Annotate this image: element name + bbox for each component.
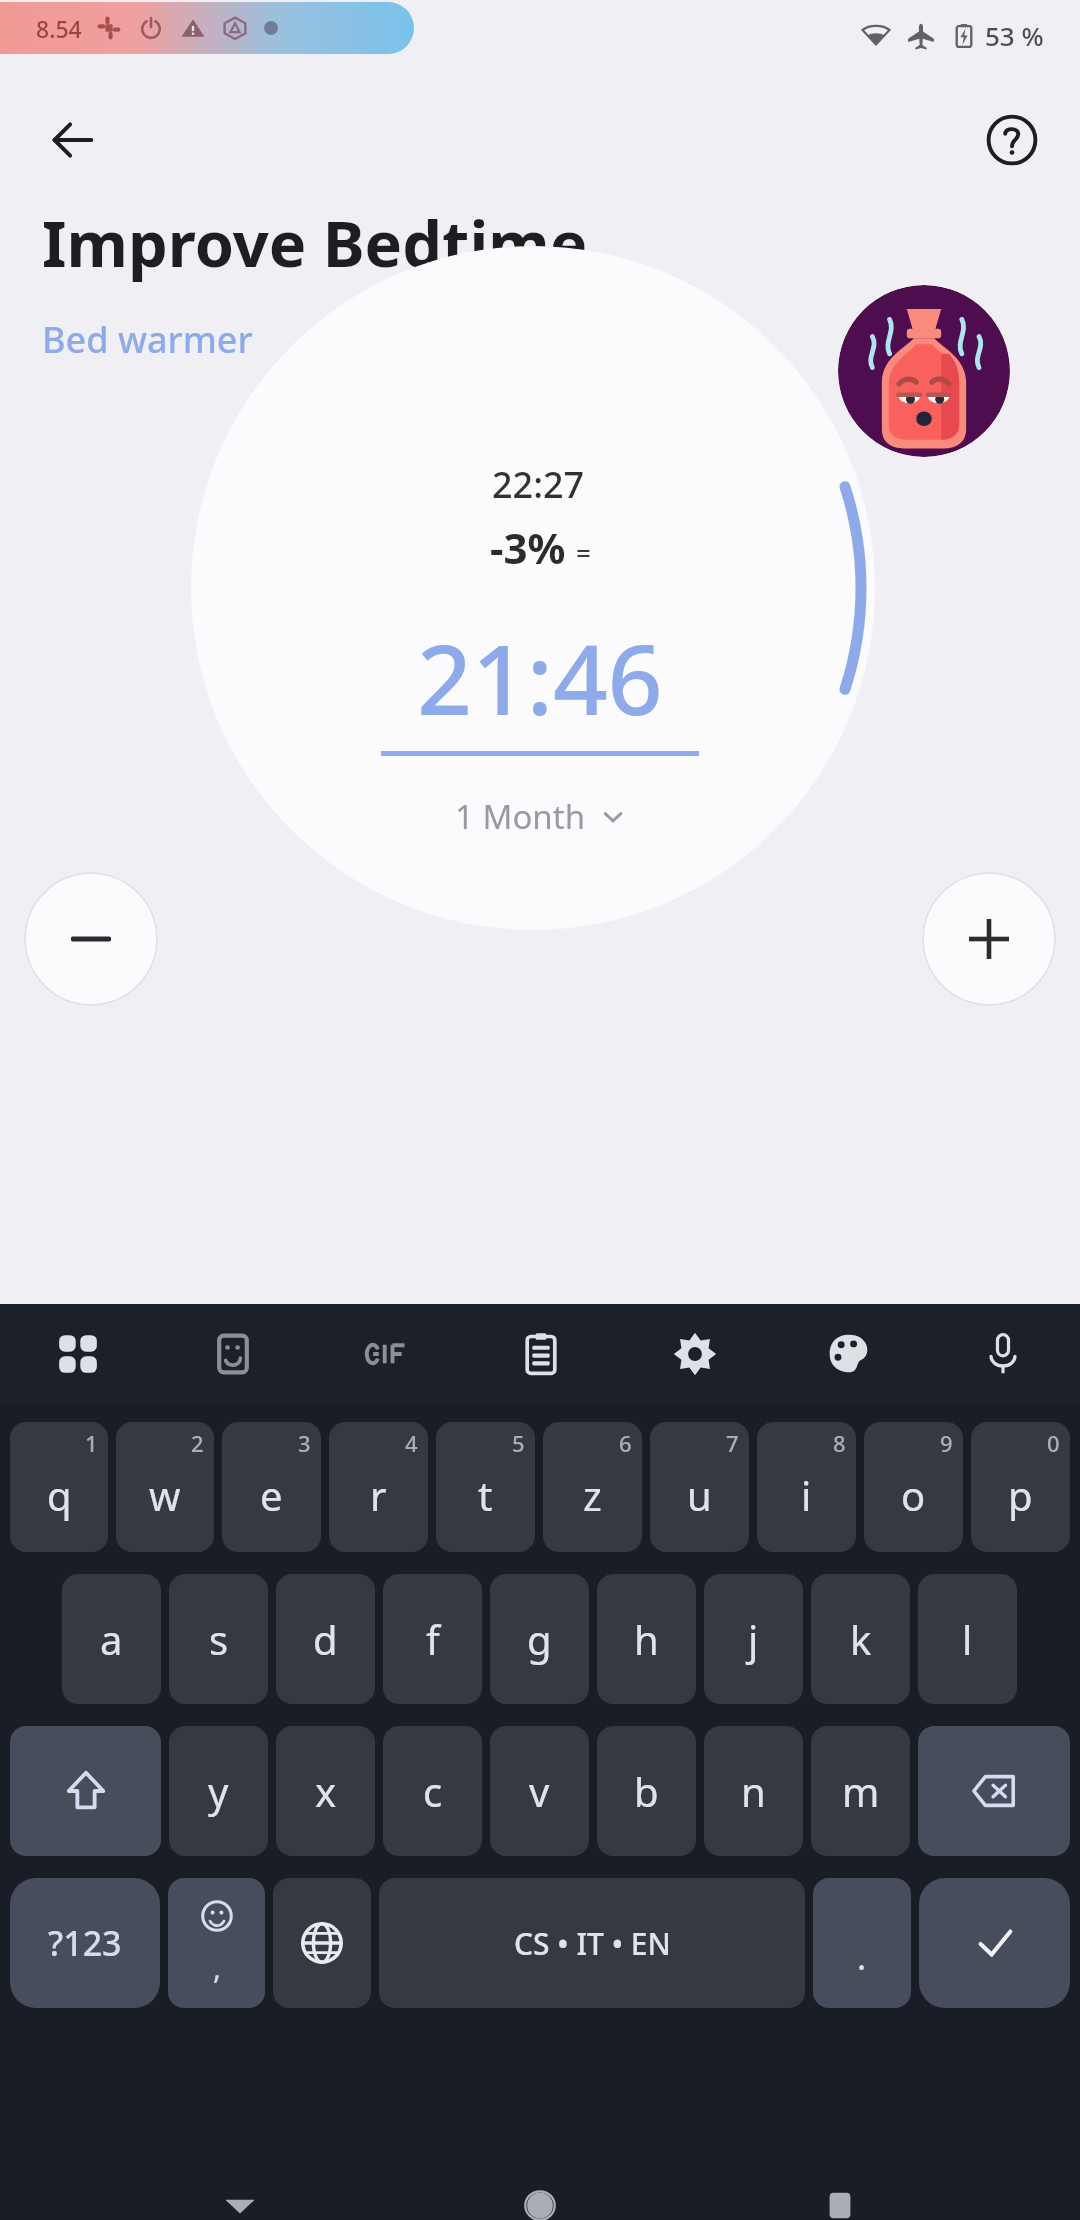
button[interactable]: Increase	[922, 872, 1056, 1006]
button[interactable]: 8	[757, 1422, 856, 1552]
button[interactable]: Hide keyboard	[180, 2191, 300, 2220]
staticText: r	[370, 1468, 387, 1522]
staticText: -3%	[490, 519, 566, 576]
staticText: a	[100, 1612, 123, 1666]
button[interactable]: Back	[30, 98, 114, 182]
button[interactable]: 9	[864, 1422, 963, 1552]
staticText: p	[1008, 1468, 1033, 1522]
staticText: q	[47, 1468, 72, 1522]
button[interactable]: g	[490, 1574, 589, 1704]
button[interactable]: Themes	[772, 1304, 926, 1404]
button[interactable]: Settings	[618, 1304, 772, 1404]
button[interactable]: k	[811, 1574, 910, 1704]
staticText: w	[149, 1468, 181, 1522]
button[interactable]: s	[169, 1574, 268, 1704]
button[interactable]: v	[490, 1726, 589, 1856]
staticText: 3	[298, 1428, 311, 1458]
staticText: =	[576, 534, 591, 569]
button[interactable]: Emoji	[168, 1878, 265, 2008]
staticText: l	[962, 1612, 973, 1666]
button[interactable]: 3	[222, 1422, 321, 1552]
button[interactable]: 4	[329, 1422, 428, 1552]
button[interactable]: a	[62, 1574, 161, 1704]
staticText: .	[857, 1934, 867, 1980]
staticText: CS • IT • EN	[514, 1923, 671, 1964]
button[interactable]: Shift	[10, 1726, 161, 1856]
button[interactable]: x	[276, 1726, 375, 1856]
button[interactable]: Recent apps	[780, 2191, 900, 2220]
button[interactable]: .	[813, 1878, 911, 2008]
staticText: 7	[726, 1428, 739, 1458]
button[interactable]: ?123	[10, 1878, 160, 2008]
button[interactable]: Change language	[273, 1878, 371, 2008]
staticText: 1	[85, 1428, 98, 1458]
staticText: u	[687, 1468, 712, 1522]
staticText: 22:27	[492, 460, 585, 509]
button[interactable]: Enter	[919, 1878, 1070, 2008]
staticText: i	[801, 1468, 812, 1522]
staticText: Bed warmer	[42, 315, 253, 364]
staticText: 6	[619, 1428, 632, 1458]
button[interactable]: 7	[650, 1422, 749, 1552]
button[interactable]: GIF	[310, 1304, 464, 1404]
staticText: 5	[512, 1428, 525, 1458]
button[interactable]: Decrease	[24, 872, 158, 1006]
staticText: f	[426, 1612, 440, 1666]
button[interactable]: c	[383, 1726, 482, 1856]
staticText: j	[748, 1612, 759, 1666]
staticText: v	[529, 1764, 550, 1818]
staticText: c	[423, 1764, 443, 1818]
staticText: ?123	[48, 1920, 122, 1966]
button[interactable]: 5	[436, 1422, 535, 1552]
staticText: z	[583, 1468, 602, 1522]
button[interactable]: j	[704, 1574, 803, 1704]
staticText: x	[315, 1764, 337, 1818]
button[interactable]: h	[597, 1574, 696, 1704]
staticText: 21:46	[417, 612, 663, 743]
button[interactable]: Home	[480, 2191, 600, 2220]
button[interactable]: 1	[10, 1422, 108, 1552]
button[interactable]: y	[169, 1726, 268, 1856]
button[interactable]: l	[918, 1574, 1017, 1704]
staticText: Improve Bedtime	[42, 200, 588, 286]
button[interactable]: 2	[116, 1422, 214, 1552]
staticText: 0	[1047, 1428, 1060, 1458]
button[interactable]: 1 Month	[447, 790, 634, 843]
button[interactable]: 0	[971, 1422, 1070, 1552]
button[interactable]: Clipboard	[464, 1304, 618, 1404]
button[interactable]: CS • IT • EN	[379, 1878, 805, 2008]
button[interactable]: b	[597, 1726, 696, 1856]
staticText: d	[313, 1612, 338, 1666]
staticText: 8.54	[36, 13, 82, 44]
staticText: h	[634, 1612, 659, 1666]
button[interactable]: 6	[543, 1422, 642, 1552]
button[interactable]: Voice input	[926, 1304, 1080, 1404]
button[interactable]: Apps	[0, 1304, 155, 1404]
staticText: 53 %	[985, 18, 1044, 53]
staticText: n	[741, 1764, 766, 1818]
button[interactable]: Help	[970, 98, 1054, 182]
button[interactable]: Bed warmer	[42, 315, 253, 364]
button[interactable]: Backspace	[918, 1726, 1070, 1856]
button[interactable]: f	[383, 1574, 482, 1704]
staticText: 8	[833, 1428, 846, 1458]
staticText: e	[260, 1468, 283, 1522]
button[interactable]: Stickers	[155, 1304, 310, 1404]
staticText: 2	[191, 1428, 204, 1458]
button[interactable]: d	[276, 1574, 375, 1704]
staticText: 9	[940, 1428, 953, 1458]
staticText: s	[209, 1612, 229, 1666]
button[interactable]: n	[704, 1726, 803, 1856]
staticText: y	[208, 1764, 229, 1818]
staticText: 1 Month	[455, 794, 586, 839]
staticText: b	[634, 1764, 659, 1818]
staticText: t	[478, 1468, 493, 1522]
button[interactable]: 21:46	[417, 612, 663, 743]
button[interactable]: Character avatar	[838, 285, 1010, 457]
staticText: g	[527, 1612, 552, 1666]
staticText: m	[842, 1764, 880, 1818]
staticText: ,	[213, 1947, 222, 1988]
button[interactable]: m	[811, 1726, 910, 1856]
staticText: k	[850, 1612, 872, 1666]
staticText: o	[901, 1468, 926, 1522]
